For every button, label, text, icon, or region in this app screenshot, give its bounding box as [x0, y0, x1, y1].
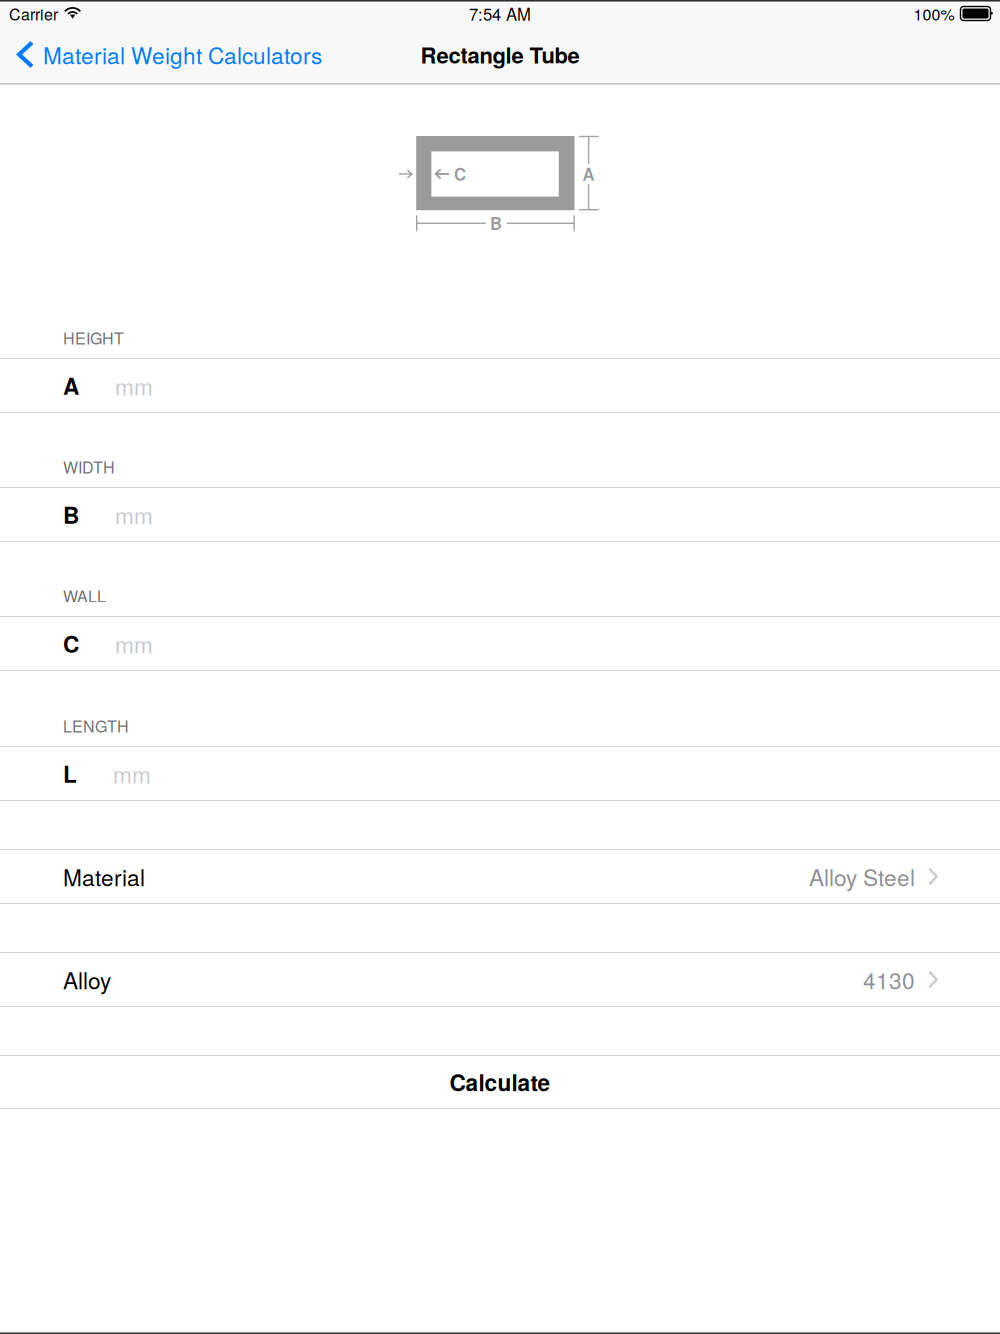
button[interactable]: Calculate — [0, 1056, 1000, 1108]
button[interactable]: Material Weight Calculators — [0, 27, 332, 81]
staticText: HEIGHT — [63, 326, 124, 349]
staticText: B — [490, 211, 502, 235]
staticText: LENGTH — [63, 714, 129, 737]
staticText: A — [63, 369, 79, 402]
staticText: mm — [113, 757, 151, 790]
staticText: L — [63, 757, 77, 790]
staticText: 7:54 AM — [469, 2, 531, 25]
staticText: mm — [115, 369, 153, 402]
staticText: A — [583, 162, 595, 186]
staticText: WIDTH — [63, 455, 115, 478]
staticText: 100% — [913, 2, 954, 25]
staticText: Material Weight Calculators — [43, 38, 322, 71]
staticText: C — [63, 627, 79, 660]
staticText: mm — [115, 627, 153, 660]
button[interactable]: L — [0, 747, 1000, 800]
staticText: Alloy — [63, 963, 111, 996]
staticText: Material — [63, 860, 145, 893]
button[interactable]: B — [0, 488, 1000, 541]
staticText: Rectangle Tube — [420, 39, 579, 70]
button[interactable]: Alloy — [0, 953, 1000, 1006]
staticText: Calculate — [449, 1066, 550, 1098]
staticText: C — [454, 162, 466, 186]
button[interactable]: C — [0, 617, 1000, 670]
staticText: mm — [115, 498, 153, 531]
button[interactable]: A — [0, 359, 1000, 412]
staticText: Alloy Steel — [809, 860, 915, 893]
staticText: WALL — [63, 584, 106, 607]
staticText: B — [63, 498, 79, 531]
staticText: 4130 — [863, 963, 915, 996]
button[interactable]: Material — [0, 850, 1000, 903]
staticText: Carrier — [9, 2, 58, 25]
